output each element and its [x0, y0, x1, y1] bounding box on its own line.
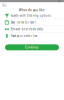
staticText: Continue — [25, 46, 39, 49]
staticText: Track your order live — [11, 34, 38, 38]
staticText: Browse best deals daily — [11, 27, 43, 31]
button[interactable]: Browse best deals daily — [0, 26, 64, 32]
button[interactable]: Track your order live — [0, 32, 64, 39]
button[interactable]: Search with filtering options — [0, 12, 64, 19]
button[interactable]: Skip — [0, 2, 10, 8]
staticText: What do you like — [19, 8, 45, 12]
staticText: Save items for later — [11, 21, 36, 24]
button[interactable]: Save items for later — [0, 19, 64, 26]
staticText: Skip — [2, 4, 7, 7]
button[interactable]: Continue — [5, 44, 59, 50]
staticText: Search with filtering options — [11, 14, 51, 17]
